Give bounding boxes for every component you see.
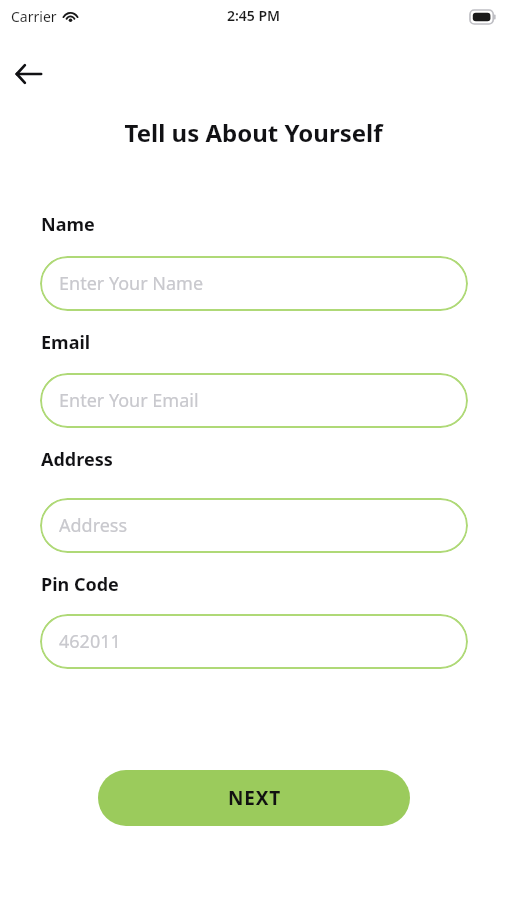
button[interactable]: NEXT [98,770,410,826]
button[interactable]: Address [40,498,468,553]
staticText: 2:45 PM [0,6,507,25]
staticText: Pin Code [41,572,119,597]
button[interactable]: Enter Your Email [40,373,468,428]
staticText: Address [59,513,128,538]
button[interactable]: Enter Your Name [40,256,468,311]
staticText: NEXT [228,785,281,811]
staticText: Address [41,447,113,472]
button[interactable]: 462011 [40,614,468,669]
button[interactable]: Back [6,54,50,94]
staticText: Tell us About Yourself [0,116,507,149]
staticText: 462011 [59,629,121,654]
staticText: Enter Your Email [59,388,199,413]
staticText: Email [41,330,91,355]
staticText: Carrier [11,7,57,26]
staticText: Enter Your Name [59,271,204,296]
staticText: Name [41,212,95,237]
